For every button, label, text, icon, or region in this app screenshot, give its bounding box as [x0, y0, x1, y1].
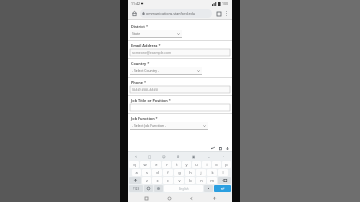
button[interactable]: (###) ###-#### — [130, 86, 230, 93]
button[interactable]: Toolbar # — [171, 153, 186, 160]
staticText: d — [156, 170, 159, 175]
button[interactable]: Toolbar – — [201, 153, 216, 160]
staticText: c — [167, 178, 169, 183]
staticText: b — [189, 178, 192, 183]
button[interactable]: k — [207, 169, 217, 176]
button[interactable]: State — [130, 30, 182, 37]
staticText: q — [133, 162, 136, 167]
button[interactable]: p — [222, 161, 231, 168]
staticText: o — [215, 162, 218, 167]
staticText: s — [146, 170, 148, 175]
button[interactable]: h — [185, 169, 195, 176]
button[interactable]: q — [129, 161, 139, 168]
staticText: j — [200, 170, 202, 175]
button[interactable] — [130, 104, 230, 111]
staticText: p — [225, 162, 228, 167]
button[interactable]: Shift — [129, 177, 141, 184]
button[interactable]: i — [202, 161, 211, 168]
button[interactable]: - Select Country - — [130, 67, 202, 74]
staticText: 100 — [222, 1, 229, 6]
staticText: a — [135, 170, 138, 175]
staticText: x — [156, 178, 159, 183]
button[interactable]: ommunications.stanford.edu — [140, 9, 212, 18]
staticText: (###) ###-#### — [132, 87, 158, 92]
button[interactable]: e — [151, 161, 161, 168]
staticText: k — [211, 170, 214, 175]
button[interactable]: m — [207, 177, 217, 184]
button[interactable]: Home — [165, 194, 173, 202]
button[interactable]: Hide keyboard — [210, 194, 218, 202]
staticText: z — [146, 178, 148, 183]
button[interactable]: u — [192, 161, 201, 168]
staticText: someone@example.com — [132, 50, 172, 55]
staticText: w — [143, 162, 147, 167]
button[interactable]: Autofill — [210, 145, 216, 151]
button[interactable]: Back — [187, 194, 195, 202]
button[interactable]: y — [182, 161, 191, 168]
staticText: h — [189, 170, 192, 175]
staticText: ommunications.stanford.edu — [146, 11, 196, 16]
button[interactable]: a — [132, 169, 141, 176]
button[interactable]: Backspace — [218, 177, 231, 184]
staticText: ☺ — [162, 155, 166, 159]
button[interactable]: f — [163, 169, 173, 176]
staticText: Email Address * — [131, 43, 161, 48]
staticText: 11:42 — [131, 1, 140, 6]
button[interactable]: t — [172, 161, 181, 168]
staticText: < — [135, 154, 137, 159]
staticText: n — [200, 178, 203, 183]
button[interactable]: Clipboard — [217, 145, 223, 151]
button[interactable]: g — [174, 169, 184, 176]
staticText: - Select Country - — [132, 68, 159, 73]
staticText: Job Title or Position * — [131, 98, 171, 103]
button[interactable]: l — [218, 169, 228, 176]
staticText: v — [178, 178, 181, 183]
button[interactable]: Voice input — [224, 145, 230, 151]
staticText: e — [155, 162, 158, 167]
button[interactable]: Toolbar □ — [143, 153, 157, 160]
staticText: r — [166, 162, 168, 167]
button[interactable]: j — [196, 169, 206, 176]
button[interactable]: More options — [223, 10, 230, 17]
staticText: English — [179, 187, 189, 191]
button[interactable]: v — [174, 177, 184, 184]
staticText: # — [177, 154, 180, 159]
button[interactable]: Enter — [214, 185, 231, 192]
button[interactable]: n — [196, 177, 206, 184]
staticText: District * — [131, 24, 148, 29]
button[interactable]: w — [140, 161, 150, 168]
staticText: g — [178, 170, 181, 175]
staticText: i — [206, 162, 208, 167]
button[interactable]: Toolbar ▣ — [186, 153, 201, 160]
button[interactable]: Toolbar < — [129, 153, 143, 160]
staticText: y — [185, 162, 188, 167]
button[interactable]: - Select Job Function - — [130, 122, 208, 129]
button[interactable]: x — [152, 177, 162, 184]
button[interactable]: s — [142, 169, 151, 176]
button[interactable]: ?123 — [129, 185, 143, 192]
button[interactable]: Home — [130, 9, 139, 18]
button[interactable]: z — [142, 177, 151, 184]
button[interactable]: Tabs — [214, 9, 223, 18]
staticText: m — [210, 178, 214, 183]
staticText: ?123 — [133, 187, 140, 191]
staticText: Country * — [131, 61, 150, 66]
button[interactable]: c — [163, 177, 173, 184]
staticText: - Select Job Function - — [132, 123, 167, 128]
staticText: ▣ — [192, 155, 196, 159]
button[interactable]: r — [162, 161, 171, 168]
staticText: · — [223, 154, 224, 159]
button[interactable]: someone@example.com — [130, 49, 230, 56]
staticText: t — [176, 162, 178, 167]
button[interactable]: o — [212, 161, 221, 168]
button[interactable]: Period — [204, 185, 213, 192]
button[interactable]: d — [152, 169, 162, 176]
button[interactable]: Recents — [142, 194, 150, 202]
button[interactable]: Emoji — [144, 185, 153, 192]
button[interactable]: Change language — [154, 185, 163, 192]
button[interactable]: Toolbar ☺ — [157, 153, 171, 160]
button[interactable]: b — [185, 177, 195, 184]
button[interactable]: Space — [164, 185, 203, 192]
staticText: l — [222, 170, 224, 175]
